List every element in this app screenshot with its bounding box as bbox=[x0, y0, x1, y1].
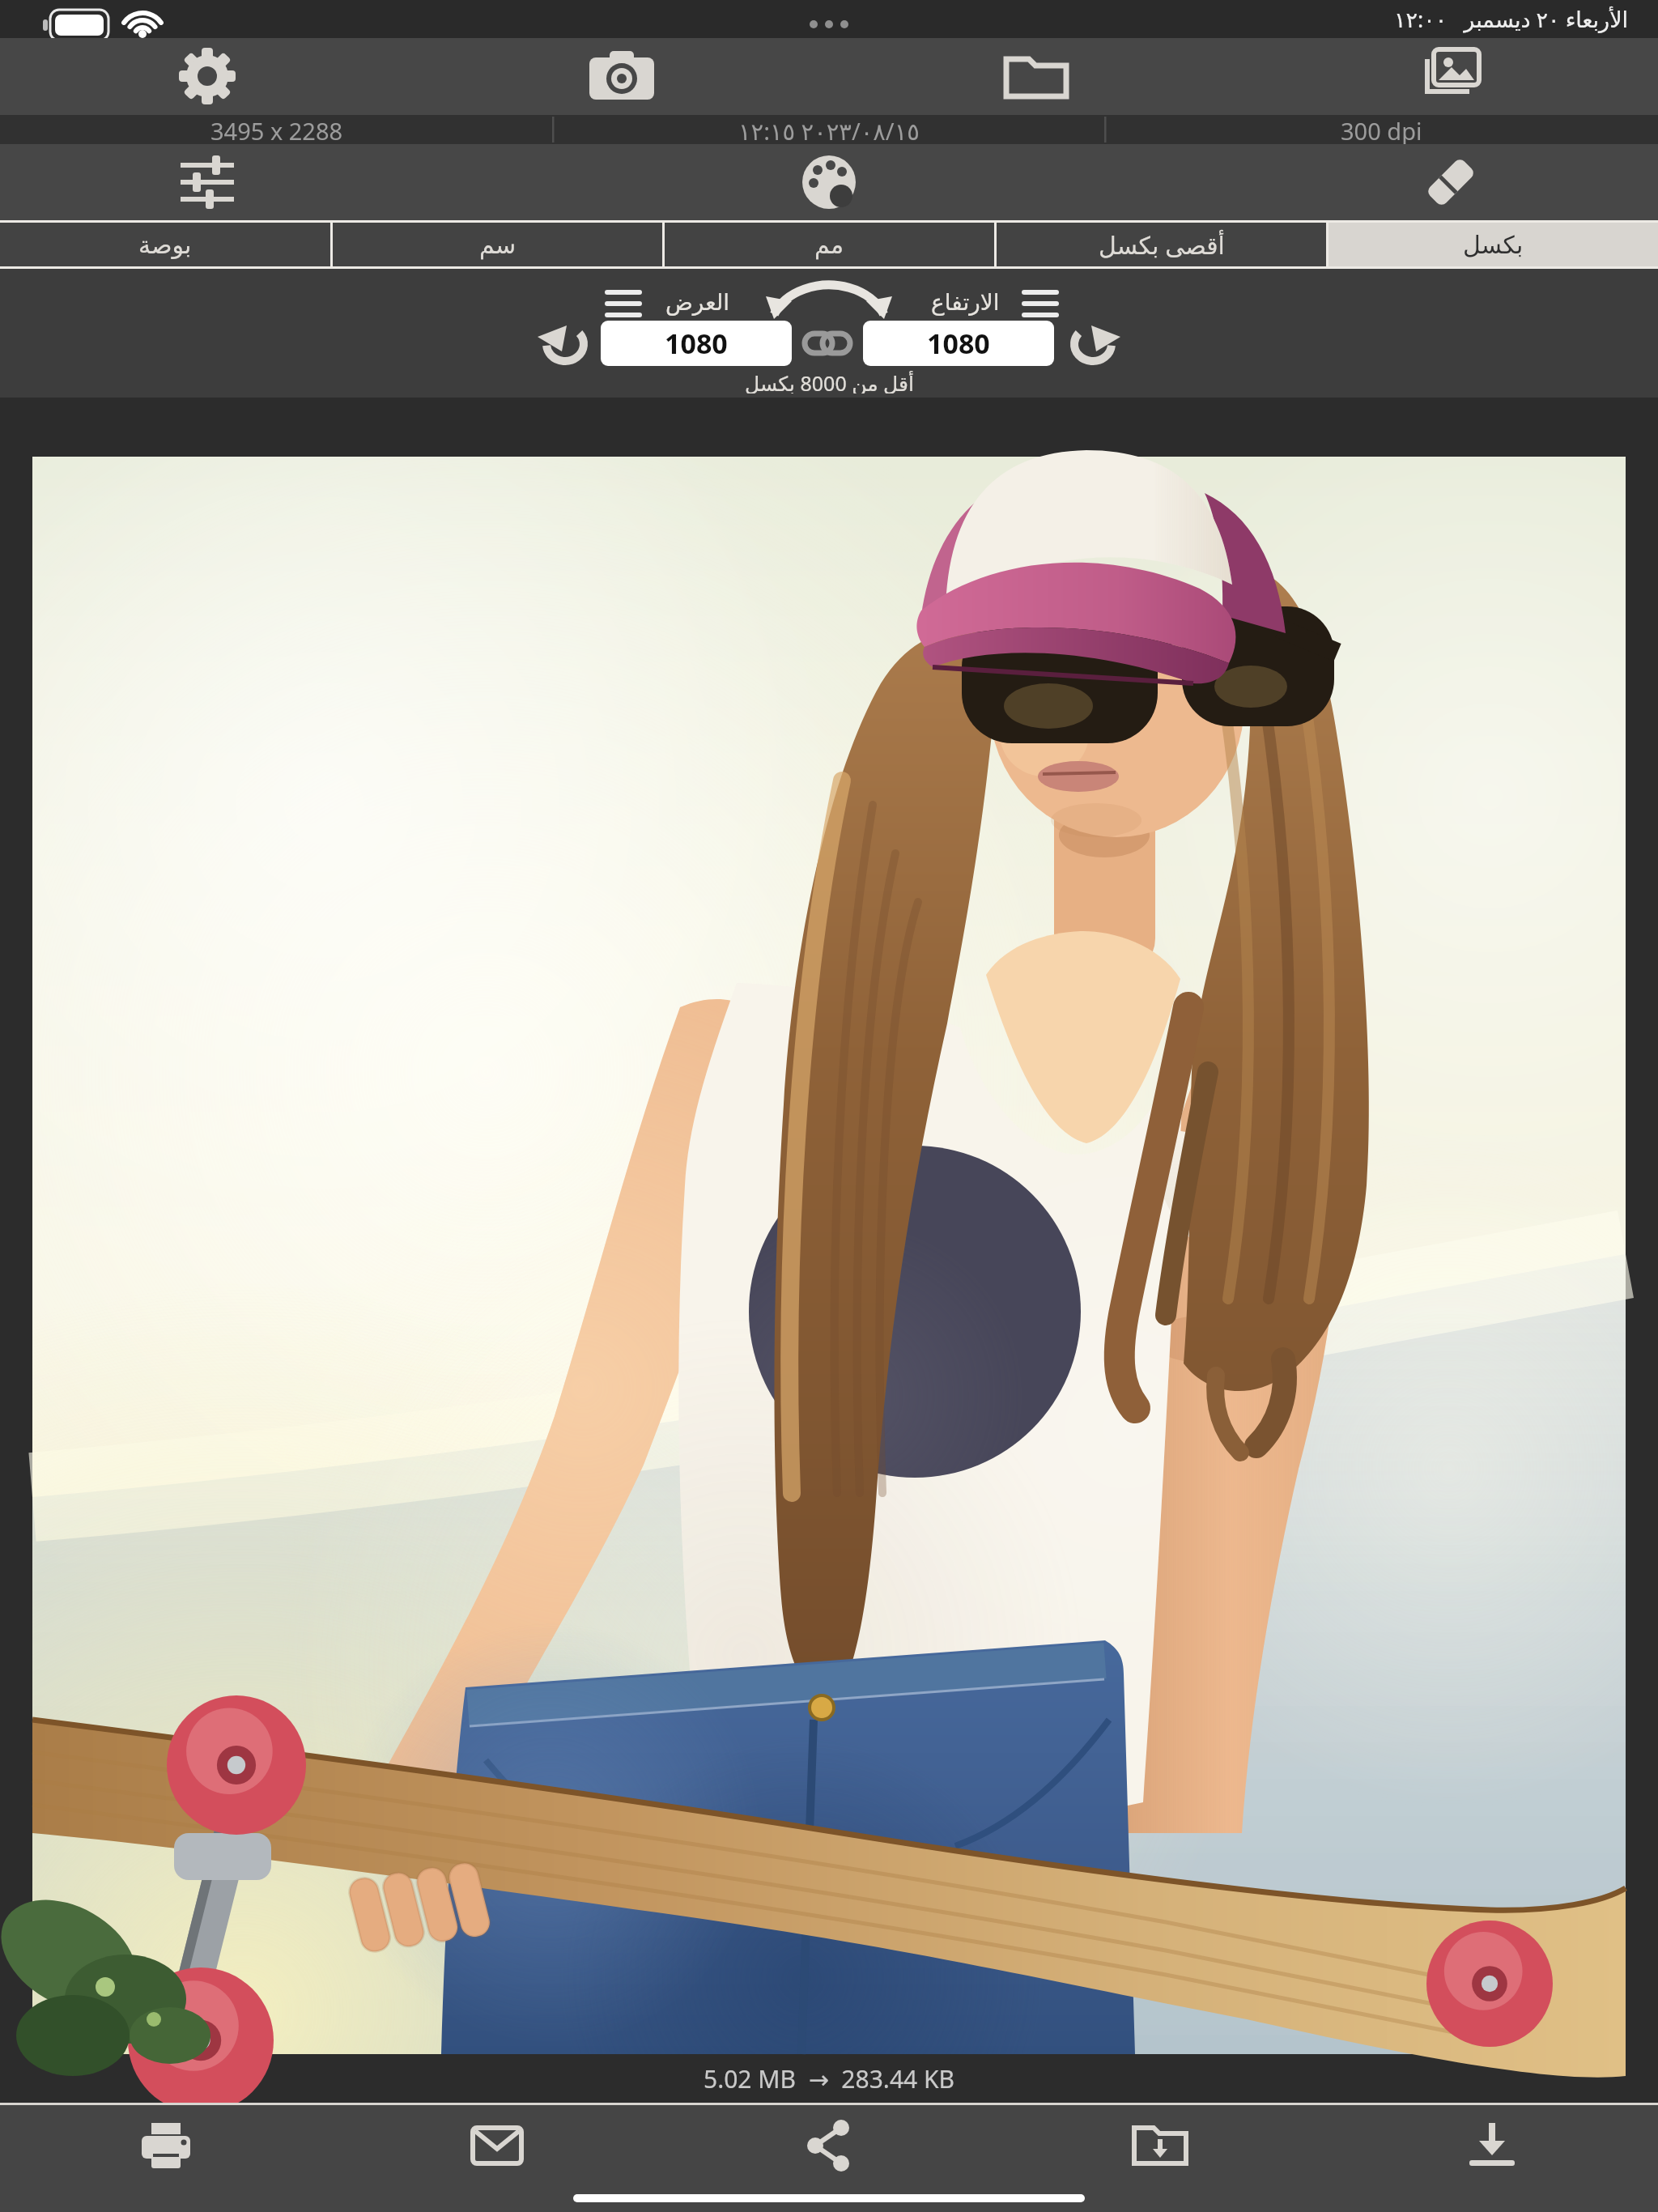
button[interactable]: مم bbox=[665, 223, 994, 266]
button[interactable] bbox=[605, 280, 642, 322]
staticText: مم bbox=[814, 231, 844, 259]
staticText: ٢٠٢٣/٠٨/١٥ ١٢:١٥ bbox=[738, 115, 920, 144]
staticText: سم bbox=[479, 231, 517, 259]
staticText: 3495 x 2288 bbox=[210, 115, 343, 144]
button[interactable] bbox=[542, 322, 586, 364]
button[interactable] bbox=[169, 144, 245, 220]
button[interactable] bbox=[662, 2105, 994, 2212]
button[interactable] bbox=[169, 38, 245, 114]
staticText: بوصة bbox=[138, 231, 192, 259]
staticText: الأربعاء ٢٠ ديسمبر ١٢:٠٠ bbox=[1394, 4, 1629, 34]
button[interactable]: بوصة bbox=[0, 223, 330, 266]
staticText: 1080 bbox=[665, 325, 728, 362]
staticText: 5.02 MB → 283.44 KB bbox=[704, 2062, 955, 2095]
staticText: الارتفاع bbox=[931, 289, 1000, 316]
staticText: 300 dpi bbox=[1341, 115, 1422, 144]
staticText: العرض bbox=[665, 289, 730, 316]
button[interactable] bbox=[331, 2105, 662, 2212]
button[interactable]: أقصى بكسل bbox=[997, 223, 1326, 266]
button[interactable] bbox=[1073, 322, 1116, 364]
button[interactable] bbox=[998, 38, 1074, 114]
button[interactable] bbox=[1326, 2105, 1658, 2212]
button[interactable] bbox=[806, 330, 851, 356]
staticText: أقصى بكسل bbox=[1099, 228, 1225, 262]
button[interactable] bbox=[584, 38, 660, 114]
button[interactable]: 1080 bbox=[601, 321, 792, 366]
button[interactable] bbox=[771, 280, 887, 321]
button[interactable] bbox=[1022, 280, 1059, 322]
button[interactable] bbox=[791, 144, 867, 220]
button[interactable] bbox=[1413, 38, 1489, 114]
staticText: 1080 bbox=[927, 325, 990, 362]
button[interactable] bbox=[0, 2105, 331, 2212]
button[interactable]: سم bbox=[333, 223, 662, 266]
button[interactable] bbox=[994, 2105, 1326, 2212]
staticText: أقل من 8000 بكسل bbox=[745, 369, 914, 393]
staticText: بكسل bbox=[1463, 231, 1524, 259]
button[interactable] bbox=[1413, 144, 1489, 220]
button[interactable]: 1080 bbox=[863, 321, 1054, 366]
button[interactable]: بكسل bbox=[1329, 223, 1658, 266]
